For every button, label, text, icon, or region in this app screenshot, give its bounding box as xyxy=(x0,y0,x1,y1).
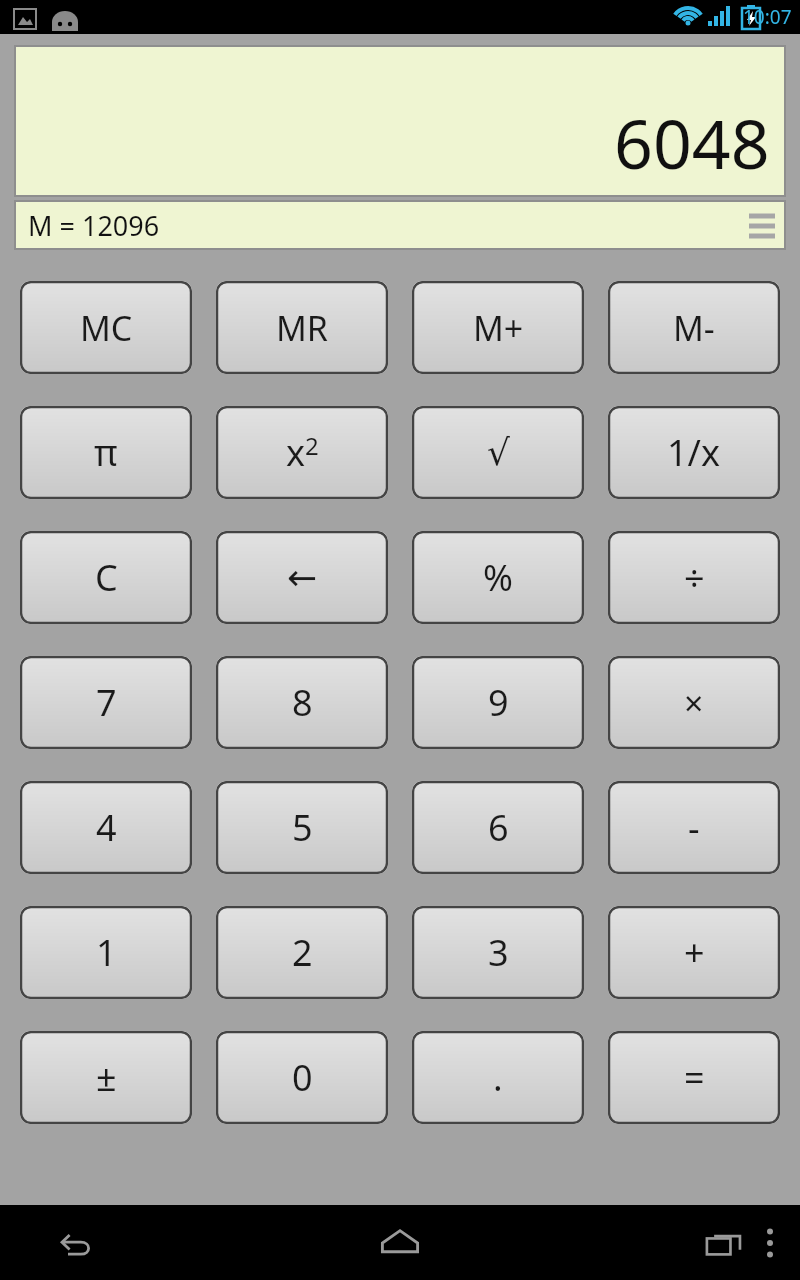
staticText: 2 xyxy=(292,928,313,977)
button[interactable]: Back xyxy=(40,1207,112,1279)
staticText: MR xyxy=(276,305,328,351)
staticText: 10:07 xyxy=(743,4,792,30)
button[interactable]: 3 xyxy=(412,906,584,999)
staticText: π xyxy=(94,428,118,477)
staticText: % xyxy=(483,553,513,602)
button[interactable]: 0 xyxy=(216,1031,388,1124)
button[interactable]: 1/x xyxy=(608,406,780,499)
button[interactable]: 5 xyxy=(216,781,388,874)
staticText: M- xyxy=(673,305,715,351)
button[interactable]: × xyxy=(608,656,780,749)
staticText: 8 xyxy=(292,678,313,727)
staticText: x2 xyxy=(286,428,319,477)
button[interactable]: 2 xyxy=(216,906,388,999)
button[interactable]: M+ xyxy=(412,281,584,374)
button[interactable]: - xyxy=(608,781,780,874)
button[interactable]: x2 xyxy=(216,406,388,499)
button[interactable]: MC xyxy=(20,281,192,374)
button[interactable]: Recent apps xyxy=(688,1207,760,1279)
staticText: 7 xyxy=(96,678,117,727)
button[interactable]: More options xyxy=(740,1213,800,1273)
staticText: √ xyxy=(487,432,510,474)
button[interactable]: 1 xyxy=(20,906,192,999)
button[interactable]: % xyxy=(412,531,584,624)
button[interactable]: 7 xyxy=(20,656,192,749)
staticText: 4 xyxy=(96,803,117,852)
staticText: 0 xyxy=(292,1053,313,1102)
button[interactable]: . xyxy=(412,1031,584,1124)
button[interactable]: 4 xyxy=(20,781,192,874)
staticText: 5 xyxy=(292,803,313,852)
button[interactable]: √ xyxy=(412,406,584,499)
staticText: MC xyxy=(80,305,133,351)
staticText: 3 xyxy=(488,928,509,977)
button[interactable]: MR xyxy=(216,281,388,374)
staticText: 9 xyxy=(488,678,509,727)
staticText: 1/x xyxy=(667,428,721,477)
button[interactable]: + xyxy=(608,906,780,999)
staticText: C xyxy=(95,553,118,602)
button[interactable]: π xyxy=(20,406,192,499)
button[interactable]: M- xyxy=(608,281,780,374)
button[interactable]: 6 xyxy=(412,781,584,874)
staticText: 1 xyxy=(96,928,117,977)
staticText: - xyxy=(688,803,700,852)
button[interactable]: ← xyxy=(216,531,388,624)
button[interactable]: Menu xyxy=(740,203,784,247)
button[interactable]: ÷ xyxy=(608,531,780,624)
staticText: + xyxy=(684,928,705,977)
button[interactable]: 9 xyxy=(412,656,584,749)
button[interactable]: 8 xyxy=(216,656,388,749)
staticText: ÷ xyxy=(684,553,705,602)
button[interactable]: Home xyxy=(364,1207,436,1279)
staticText: ← xyxy=(287,557,318,599)
button[interactable]: = xyxy=(608,1031,780,1124)
staticText: M = 12096 xyxy=(28,207,160,244)
staticText: M+ xyxy=(473,305,524,351)
staticText: = xyxy=(684,1053,705,1102)
staticText: . xyxy=(493,1053,503,1102)
button[interactable]: ± xyxy=(20,1031,192,1124)
staticText: ± xyxy=(96,1053,117,1102)
staticText: × xyxy=(684,680,704,726)
staticText: 6048 xyxy=(614,96,770,189)
button[interactable]: C xyxy=(20,531,192,624)
staticText: 6 xyxy=(488,803,509,852)
